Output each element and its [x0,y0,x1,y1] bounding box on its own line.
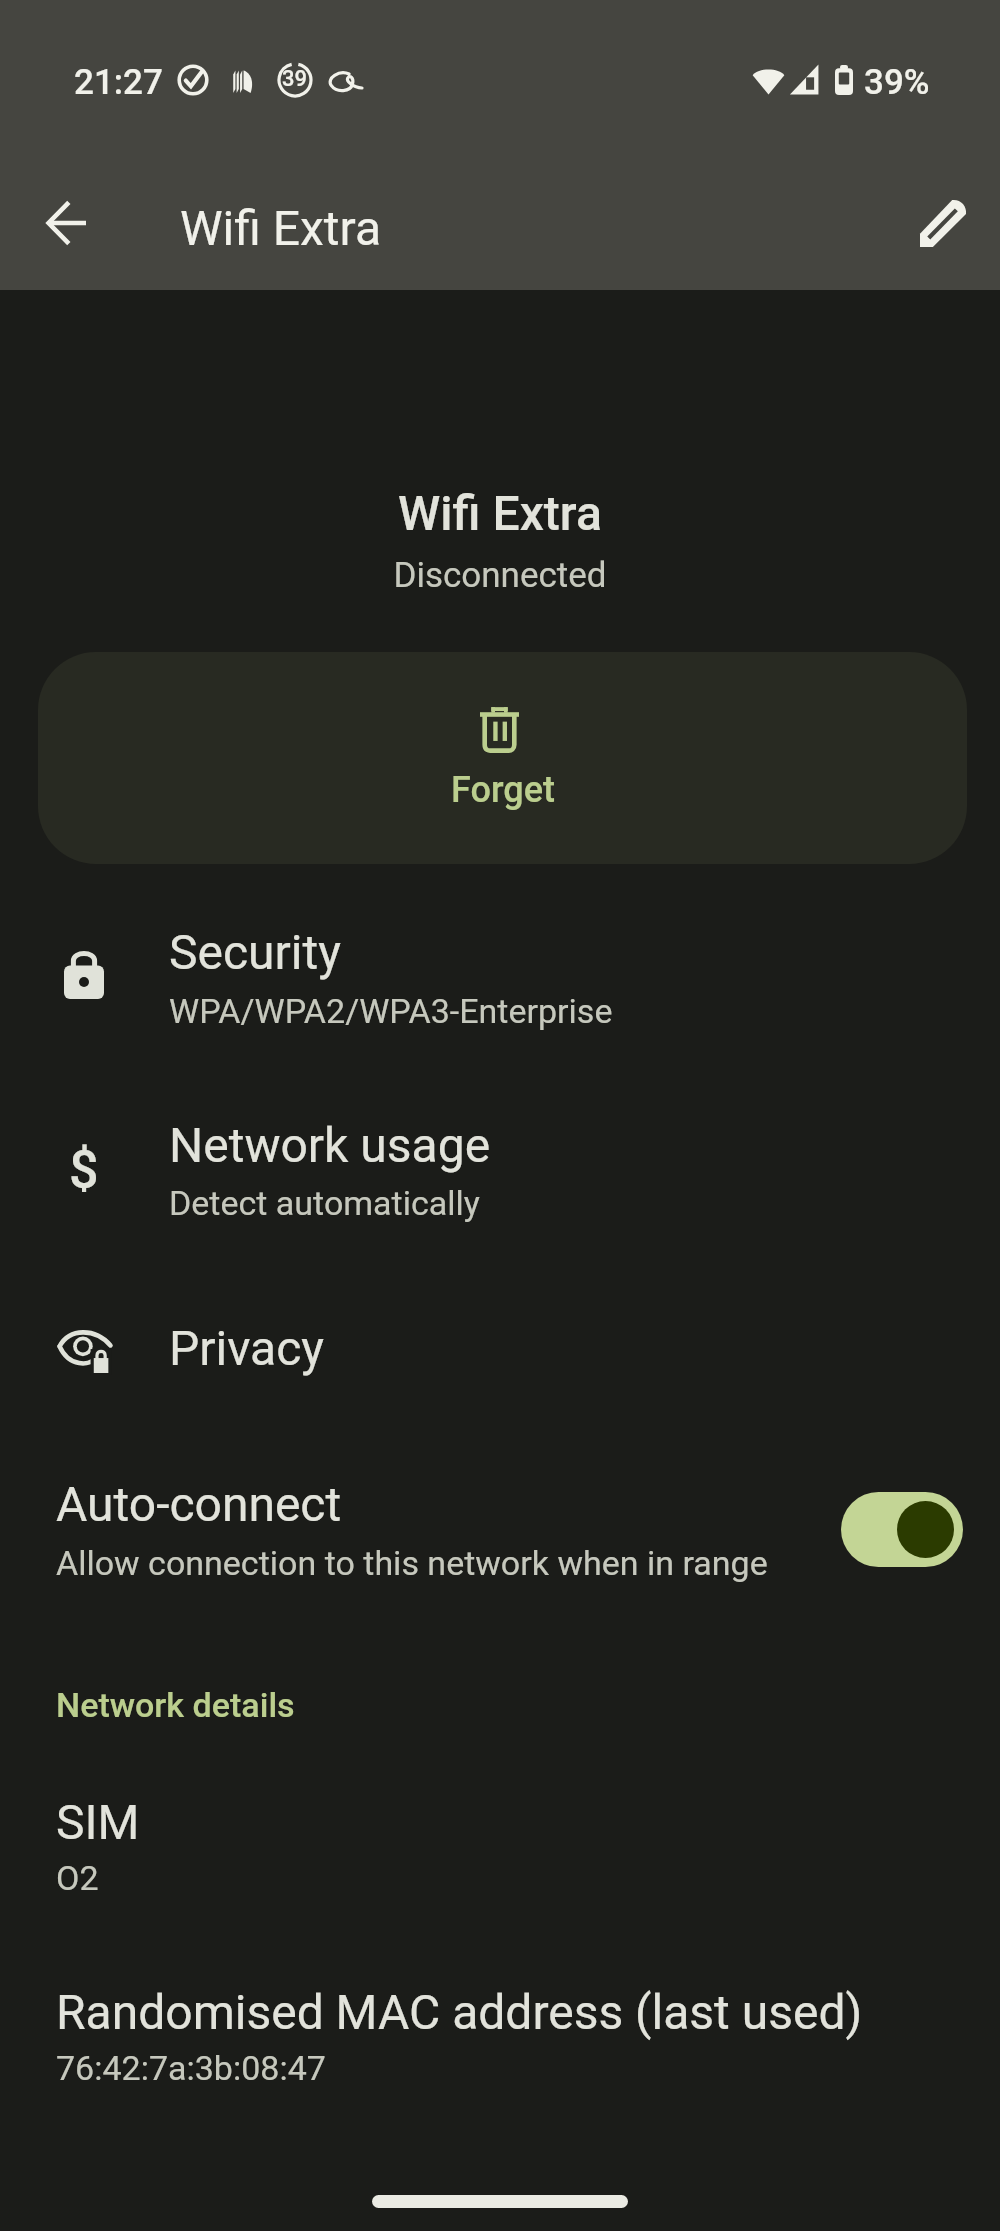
staticText: Forget [451,769,555,811]
staticText: Randomised MAC address (last used) [56,1984,863,2040]
button[interactable]: Privacy [0,1286,1000,1380]
staticText: Wifi Extra [180,200,381,256]
button[interactable]: Back [22,183,110,271]
staticText: SIM [56,1794,140,1850]
staticText: O2 [56,1858,99,1898]
button[interactable]: SIM [0,1760,1000,1915]
staticText: Detect automatically [169,1183,480,1223]
button[interactable]: Auto-connect [0,1455,1000,1615]
button[interactable]: Auto-connect on [841,1492,963,1567]
staticText: $ [69,1140,99,1192]
staticText: Allow connection to this network when in… [56,1543,768,1583]
staticText: Wifi Extra [0,485,1000,541]
staticText: 76:42:7a:3b:08:47 [56,2048,326,2088]
staticText: Security [169,924,341,980]
staticText: Auto-connect [56,1476,342,1532]
button[interactable]: $ [0,1083,1000,1233]
staticText: 39 [282,66,308,92]
staticText: Privacy [169,1320,325,1376]
staticText: Disconnected [0,555,1000,596]
button[interactable]: Forget [38,652,967,864]
button[interactable]: Security [0,890,1000,1041]
staticText: WPA/WPA2/WPA3-Enterprise [169,991,613,1031]
staticText: 39% [864,62,930,103]
button[interactable]: Edit [899,183,987,271]
staticText: Network details [56,1685,295,1725]
staticText: 21:27 [74,62,163,103]
button[interactable]: Randomised MAC address (last used) [0,1950,1000,2105]
staticText: Network usage [169,1117,491,1173]
